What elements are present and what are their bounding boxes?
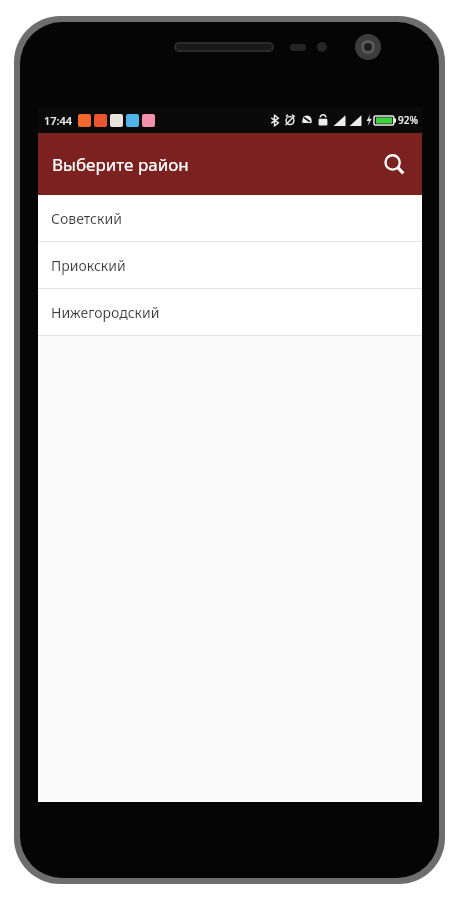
staticText: Приокский: [51, 256, 126, 275]
staticText: 92%: [398, 113, 418, 127]
button[interactable]: Нижегородский: [38, 289, 422, 335]
button[interactable]: Приокский: [38, 242, 422, 288]
button[interactable]: Советский: [38, 195, 422, 241]
staticText: Советский: [51, 209, 122, 228]
staticText: Выберите район: [52, 153, 189, 176]
staticText: Нижегородский: [51, 303, 160, 322]
staticText: 17:44: [44, 113, 73, 128]
button[interactable]: Search: [372, 142, 416, 186]
